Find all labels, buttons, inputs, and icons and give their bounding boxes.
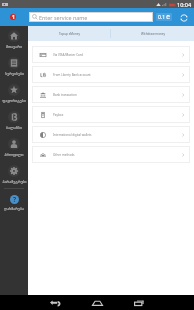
- staticText: Enter service name: [39, 14, 88, 21]
- staticText: ბალანსი: [6, 125, 22, 129]
- staticText: 1: [12, 14, 15, 20]
- staticText: ფავორიტები: [2, 98, 26, 102]
- staticText: International digital wallets: [53, 133, 92, 137]
- button[interactable]: Back: [44, 296, 66, 310]
- staticText: პროფილი: [4, 152, 24, 156]
- staticText: Withdraw money: [141, 32, 165, 36]
- button[interactable]: ბალანსი: [0, 107, 28, 134]
- button[interactable]: Notifications: [10, 14, 16, 20]
- button[interactable]: Other methods: [32, 146, 190, 163]
- staticText: Paybox: [53, 113, 64, 117]
- button[interactable]: Bank transaction: [32, 86, 190, 103]
- staticText: მთავარი: [6, 44, 22, 48]
- button[interactable]: პროფილი: [0, 134, 28, 161]
- button[interactable]: Home: [86, 296, 108, 310]
- staticText: Other methods: [53, 153, 75, 157]
- button[interactable]: Topup eMoney: [28, 26, 110, 41]
- button[interactable]: Paybox: [32, 106, 190, 123]
- button[interactable]: Recent apps: [128, 296, 150, 310]
- button[interactable]: Enter service name: [29, 12, 153, 22]
- staticText: From Liberty Bank account: [53, 73, 91, 77]
- staticText: 10:04: [177, 1, 192, 8]
- button[interactable]: ?: [0, 189, 28, 216]
- staticText: Bank transaction: [53, 93, 77, 97]
- staticText: 0.1 ₾: [158, 14, 171, 21]
- staticText: Via VISA/Master Card: [53, 53, 83, 57]
- button[interactable]: Via VISA/Master Card: [32, 46, 190, 63]
- button[interactable]: From Liberty Bank account: [32, 66, 190, 83]
- button[interactable]: პარამეტრები: [0, 161, 28, 188]
- staticText: სერვისები: [5, 71, 24, 75]
- button[interactable]: Refresh: [177, 11, 190, 24]
- button[interactable]: Withdraw money: [111, 26, 194, 41]
- button[interactable]: სერვისები: [0, 53, 28, 80]
- button[interactable]: ფავორიტები: [0, 80, 28, 107]
- button[interactable]: 0.1 ₾: [156, 13, 172, 21]
- button[interactable]: მთავარი: [0, 26, 28, 53]
- staticText: დახმარება: [4, 206, 24, 210]
- button[interactable]: International digital wallets: [32, 126, 190, 143]
- staticText: ?: [13, 195, 17, 204]
- staticText: პარამეტრები: [2, 179, 27, 183]
- staticText: Topup eMoney: [59, 32, 80, 36]
